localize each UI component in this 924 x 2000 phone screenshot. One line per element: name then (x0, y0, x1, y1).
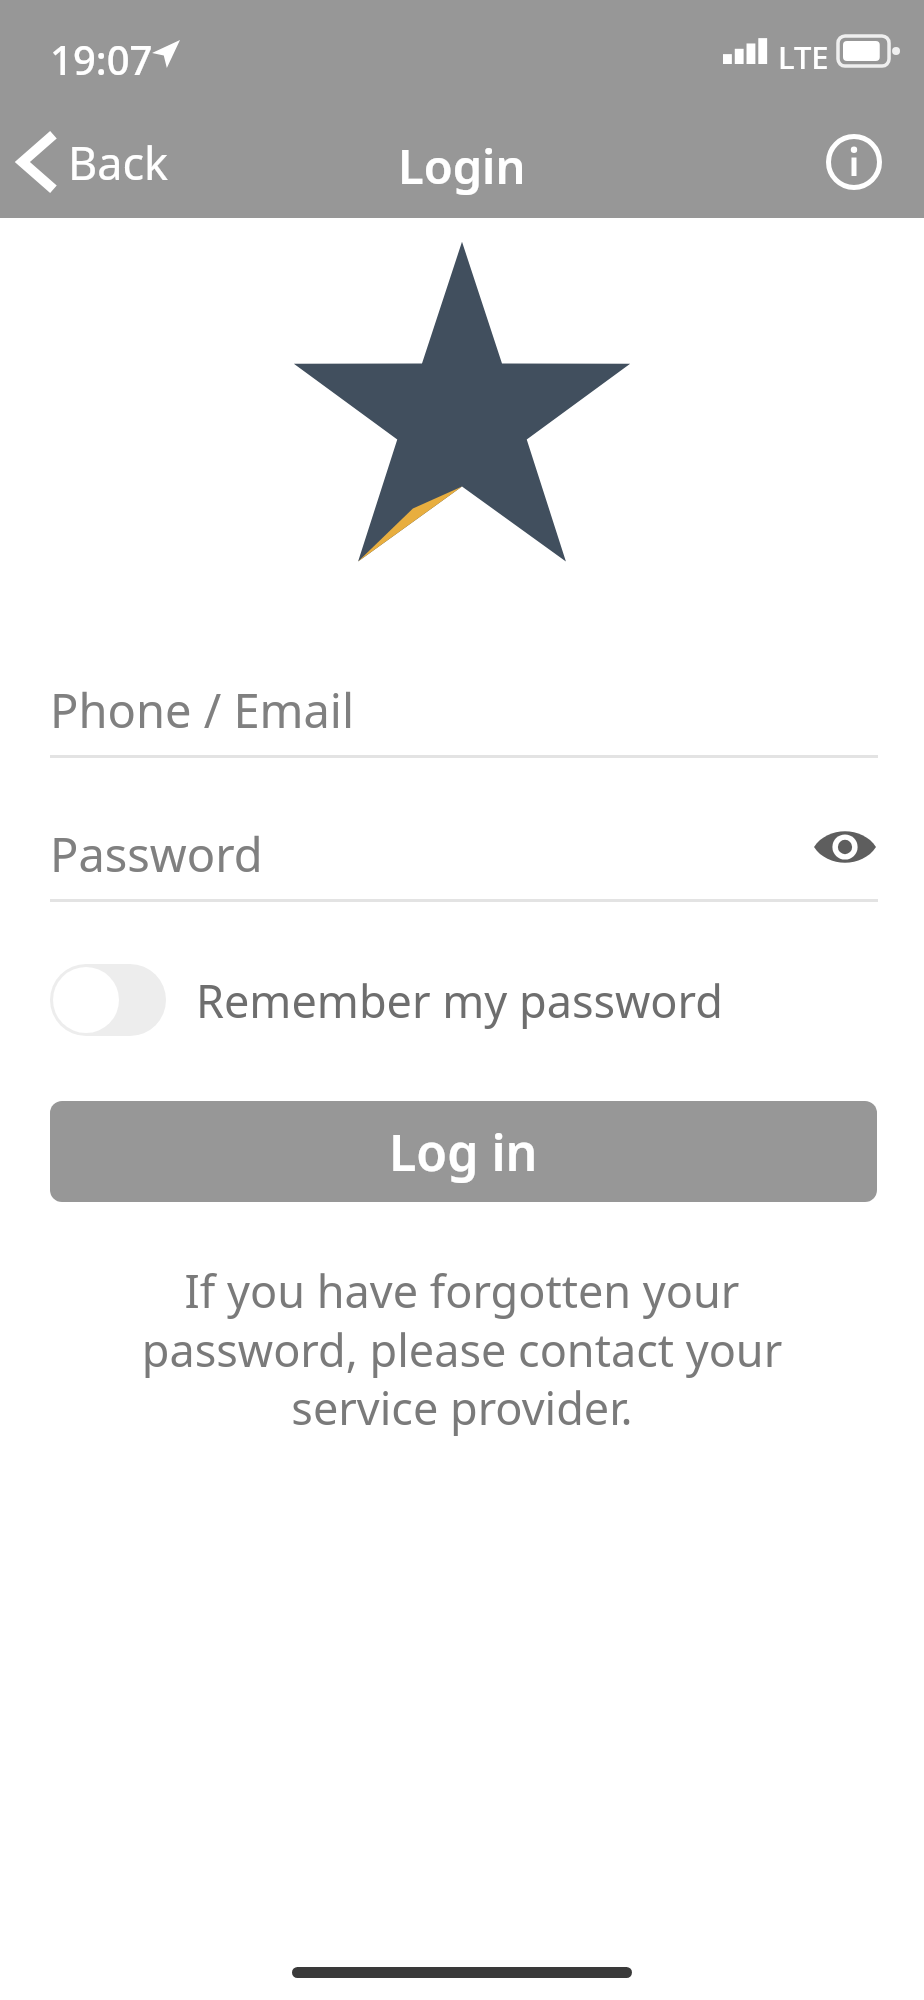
button[interactable]: Remember my password (50, 960, 723, 1040)
button[interactable]: Information (820, 128, 888, 196)
button[interactable]: Back (18, 122, 169, 202)
staticText: If you have forgotten your password, ple… (90, 1260, 834, 1438)
staticText: Remember my password (196, 970, 723, 1031)
button[interactable]: Log in (50, 1101, 877, 1202)
staticText: Back (68, 132, 169, 193)
staticText: Password (50, 822, 263, 886)
staticText: Login (398, 134, 526, 198)
staticText: Phone / Email (50, 678, 355, 742)
staticText: 19:07 (50, 32, 153, 86)
staticText: Log in (389, 1118, 538, 1186)
button[interactable]: Show password (800, 812, 890, 882)
staticText: LTE (778, 36, 829, 78)
